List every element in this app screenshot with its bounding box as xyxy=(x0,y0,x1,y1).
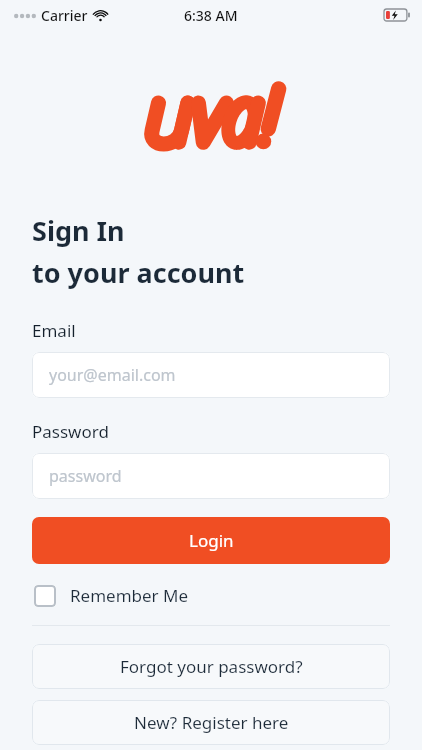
staticText: New? Register here xyxy=(134,711,289,734)
staticText: Carrier xyxy=(41,6,88,25)
staticText: Remember Me xyxy=(70,584,189,607)
button[interactable]: password xyxy=(32,453,390,499)
staticText: Password xyxy=(32,420,109,443)
staticText: your@email.com xyxy=(49,364,176,386)
button[interactable]: New? Register here xyxy=(32,700,390,745)
staticText: Login xyxy=(189,529,234,552)
button[interactable]: Forgot your password? xyxy=(32,644,390,689)
other: uva! logo xyxy=(141,82,281,152)
button[interactable]: your@email.com xyxy=(32,352,390,398)
staticText: Email xyxy=(32,319,76,342)
staticText: to your account xyxy=(32,254,245,291)
staticText: Sign In xyxy=(32,212,125,249)
button[interactable]: Login xyxy=(32,517,390,564)
staticText: Forgot your password? xyxy=(120,655,303,678)
staticText: 6:38 AM xyxy=(184,6,238,25)
staticText: password xyxy=(49,465,122,487)
button[interactable]: Remember Me xyxy=(32,578,191,613)
